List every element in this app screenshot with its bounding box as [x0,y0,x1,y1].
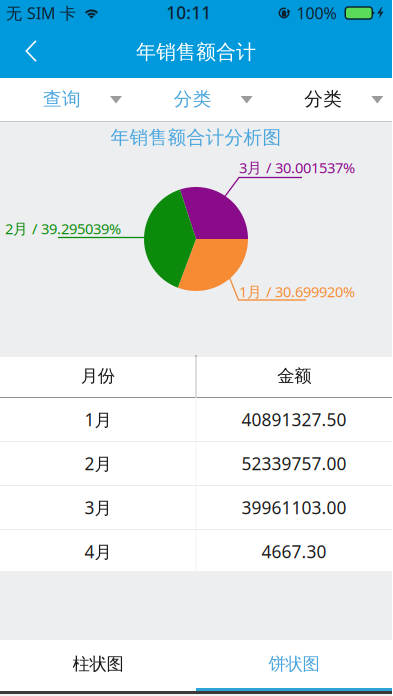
button[interactable]: 分类 [261,78,392,121]
staticText: 39961103.00 [241,496,346,519]
button[interactable]: 返回 [0,27,59,77]
staticText: 月份 [81,365,115,387]
staticText: 分类 [174,87,212,110]
button[interactable]: 饼状图 [196,640,392,691]
staticText: 100% [296,2,336,24]
staticText: 52339757.00 [241,452,346,475]
staticText: 金额 [277,365,311,387]
staticText: 年销售额合计分析图 [110,126,281,149]
staticText: 10:11 [166,1,211,24]
staticText: 1月 [84,408,111,431]
staticText: 查询 [43,87,81,110]
staticText: 柱状图 [72,653,123,675]
staticText: 4667.30 [261,540,326,563]
staticText: 无 SIM 卡 [6,2,76,24]
staticText: 40891327.50 [241,408,346,431]
staticText: 2月 [84,452,111,475]
staticText: 分类 [304,87,342,110]
button[interactable]: 分类 [131,78,261,121]
staticText: 饼状图 [268,653,319,675]
staticText: 3月 / 30.001537% [239,158,355,177]
button[interactable]: 柱状图 [0,640,196,691]
button[interactable]: 查询 [0,78,131,121]
staticText: 3月 [84,496,111,519]
staticText: 1月 / 30.699920% [239,282,355,301]
staticText: 年销售额合计 [136,40,256,64]
staticText: 4月 [84,540,111,563]
staticText: 2月 / 39.295039% [5,219,121,238]
